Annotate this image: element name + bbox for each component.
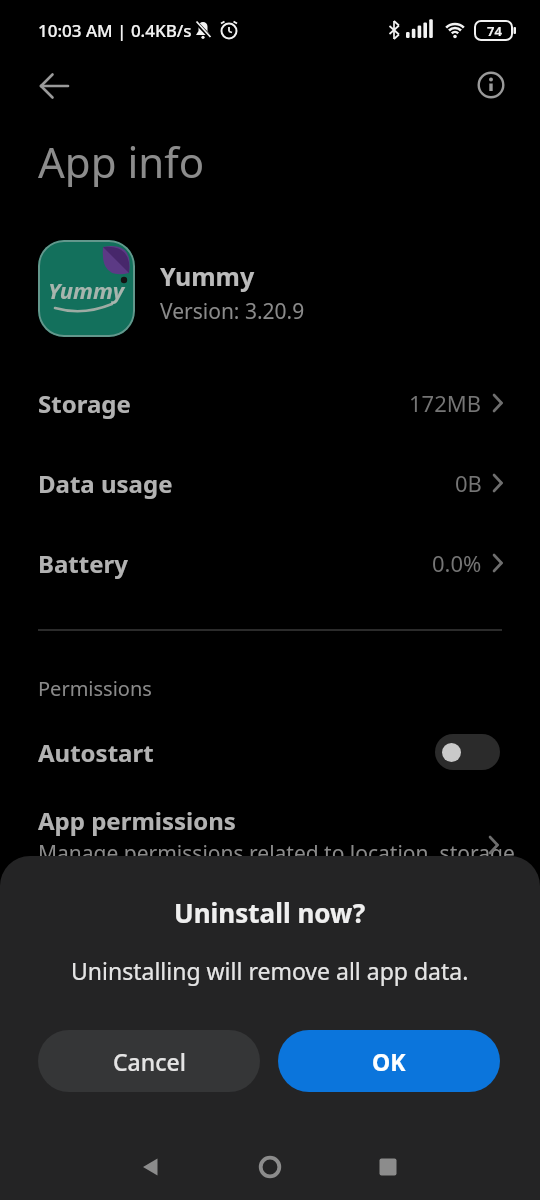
button[interactable] [252, 1149, 288, 1185]
staticText: Autostart [38, 736, 154, 769]
button[interactable] [370, 1149, 406, 1185]
staticText: App permissions [38, 804, 236, 837]
button[interactable] [468, 62, 514, 108]
button[interactable] [435, 734, 500, 770]
staticText: Manage permissions related to location, … [38, 839, 515, 868]
staticText: OK [372, 1046, 406, 1077]
button[interactable]: Cancel [38, 1030, 260, 1092]
button[interactable]: Storage [0, 363, 540, 443]
staticText: Uninstalling will remove all app data. [71, 955, 469, 986]
staticText: 10:03 AM | 0.4KB/s [38, 19, 192, 42]
button[interactable] [133, 1149, 169, 1185]
button[interactable]: Data usage [0, 443, 540, 523]
button[interactable] [30, 62, 78, 110]
staticText: Yummy [48, 275, 125, 305]
staticText: 172MB [409, 388, 482, 418]
staticText: Storage [38, 387, 131, 420]
staticText: Yummy [160, 259, 255, 293]
staticText: App info [38, 133, 205, 187]
staticText: Version: 3.20.9 [160, 297, 305, 326]
staticText: 74 [487, 22, 502, 40]
staticText: 0B [455, 468, 482, 498]
staticText: Battery [38, 547, 128, 580]
staticText: 0.0% [432, 548, 482, 578]
staticText: Data usage [38, 467, 173, 500]
staticText: Uninstall now? [174, 895, 366, 930]
staticText: Permissions [38, 675, 152, 702]
button[interactable]: App permissions [0, 794, 540, 856]
button[interactable]: Battery [0, 523, 540, 603]
staticText: Cancel [113, 1046, 186, 1077]
button[interactable]: OK [278, 1030, 500, 1092]
